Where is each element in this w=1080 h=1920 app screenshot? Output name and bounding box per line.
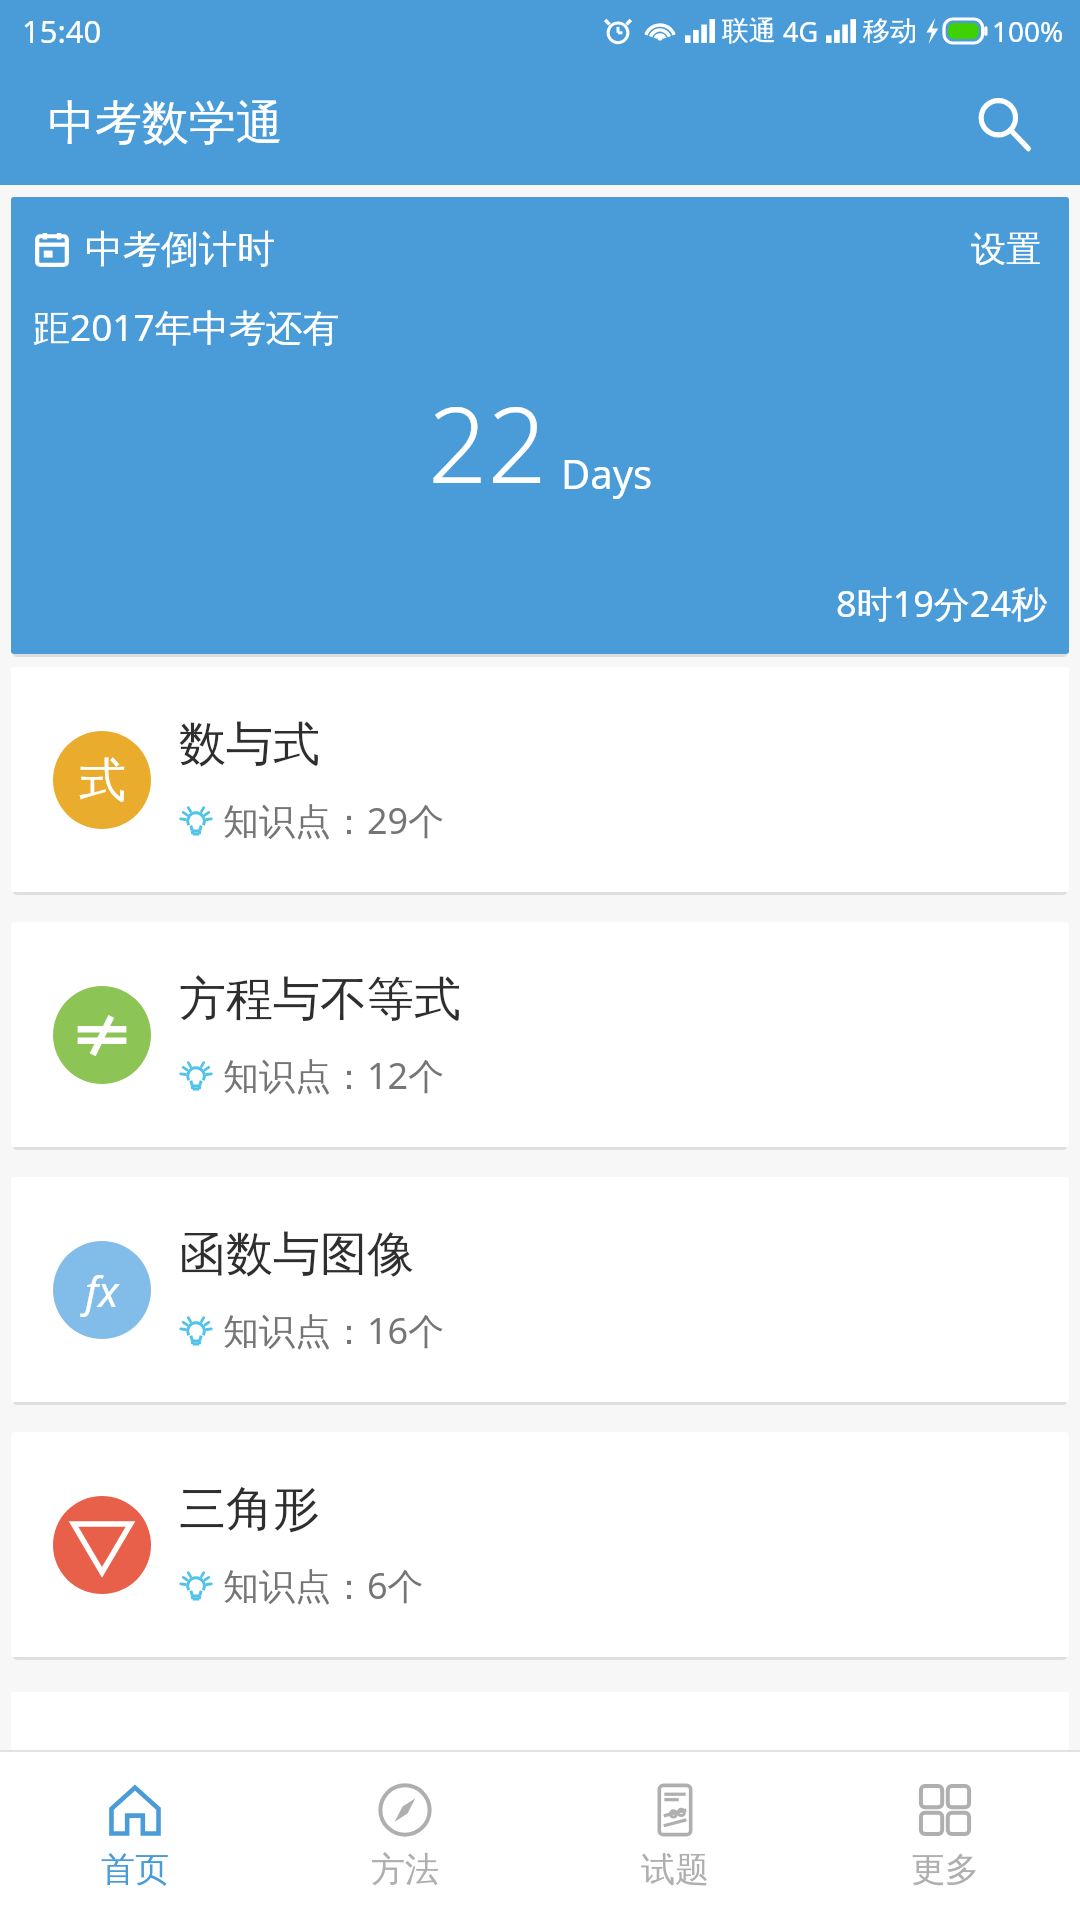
staticText: 式 (79, 751, 126, 810)
staticText: 15:40 (22, 10, 102, 52)
staticText: 设置 (971, 227, 1041, 271)
staticText: 方程与不等式 (179, 970, 461, 1029)
staticText: Days (561, 446, 653, 500)
button[interactable]: fx (11, 1177, 1069, 1402)
staticText: 更多 (911, 1848, 979, 1891)
staticText: 三角形 (179, 1480, 320, 1539)
staticText: 100% (992, 12, 1064, 50)
staticText: 联通 (722, 14, 776, 48)
button[interactable]: 更多 (810, 1752, 1080, 1920)
staticText: 22 (428, 372, 547, 514)
staticText: 首页 (101, 1848, 169, 1891)
staticText: 知识点：16个 (223, 1306, 445, 1355)
staticText: 移动 (863, 14, 917, 48)
staticText: 中考倒计时 (85, 225, 275, 273)
staticText: 8时19分24秒 (33, 579, 1047, 628)
button[interactable]: 设置 (965, 223, 1047, 275)
button[interactable]: 式 (11, 667, 1069, 892)
button[interactable]: 方程与不等式 (11, 922, 1069, 1147)
staticText: 距2017年中考还有 (33, 301, 340, 352)
button[interactable]: Search (960, 82, 1044, 166)
staticText: 方法 (371, 1848, 439, 1891)
button[interactable]: 方法 (270, 1752, 540, 1920)
staticText: 知识点：6个 (223, 1561, 424, 1610)
button[interactable]: 三角形 (11, 1432, 1069, 1657)
staticText: 函数与图像 (179, 1225, 414, 1284)
staticText: 知识点：12个 (223, 1051, 445, 1100)
button[interactable]: 试题 (540, 1752, 810, 1920)
button[interactable]: 首页 (0, 1752, 270, 1920)
staticText: 中考数学通 (48, 94, 283, 153)
staticText: 数与式 (179, 715, 320, 774)
staticText: 试题 (641, 1848, 709, 1891)
staticText: 4G (783, 13, 819, 50)
staticText: 知识点：29个 (223, 796, 445, 845)
staticText: fx (85, 1262, 119, 1319)
